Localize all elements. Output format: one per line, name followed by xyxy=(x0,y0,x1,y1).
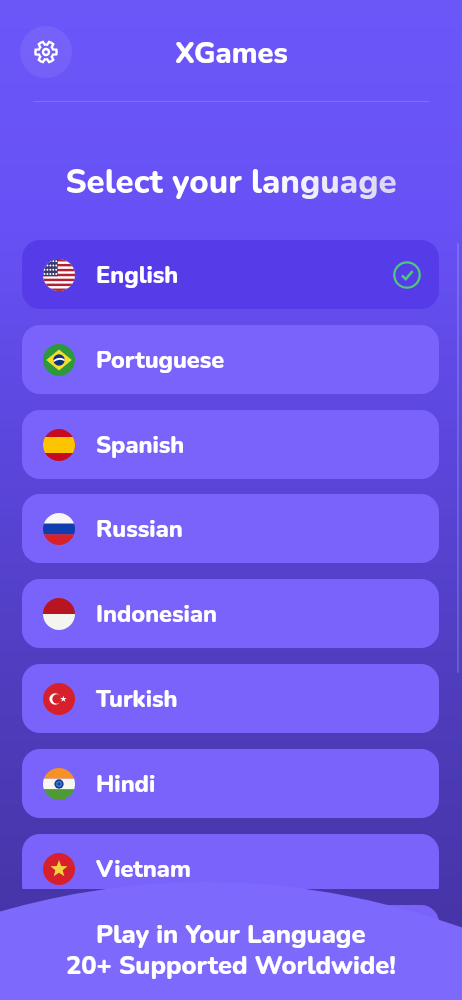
staticText: English xyxy=(96,259,179,291)
staticText: XGames xyxy=(175,34,288,74)
staticText: Spanish xyxy=(96,429,185,461)
button[interactable]: Hindi xyxy=(22,749,439,818)
staticText: Play in Your Language xyxy=(96,917,366,952)
button[interactable]: Russian xyxy=(22,494,439,563)
button[interactable]: Indonesian xyxy=(22,579,439,648)
staticText: Turkish xyxy=(96,683,178,715)
button[interactable]: Spanish xyxy=(22,410,439,479)
button[interactable]: Portuguese xyxy=(22,325,439,394)
staticText: Hindi xyxy=(96,768,156,800)
staticText: Indonesian xyxy=(96,598,217,630)
button[interactable]: Vietnam xyxy=(22,834,439,889)
staticText: Portuguese xyxy=(96,344,225,376)
button[interactable]: English xyxy=(22,240,439,309)
button[interactable]: Settings xyxy=(20,26,72,78)
staticText: Select your language xyxy=(0,160,462,205)
staticText: 20+ Supported Worldwide! xyxy=(66,948,396,983)
staticText: Russian xyxy=(96,513,183,545)
button[interactable]: Turkish xyxy=(22,664,439,733)
staticText: Vietnam xyxy=(96,853,191,885)
